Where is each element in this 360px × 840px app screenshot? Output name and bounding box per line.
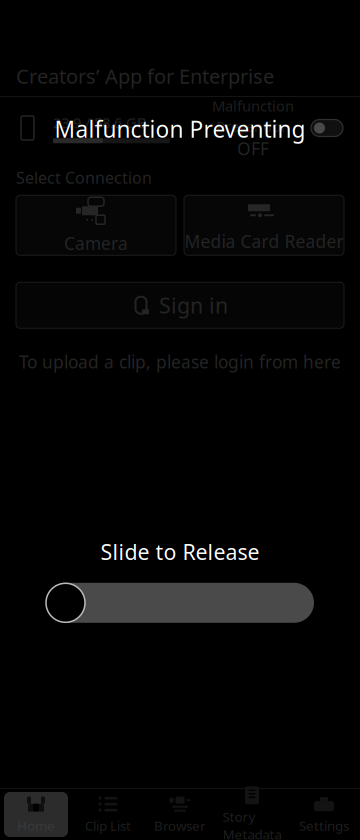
staticText: Malfunction Preventing — [54, 114, 305, 144]
button[interactable]: Slide to Release — [46, 582, 314, 624]
button[interactable]: Story Metadata — [216, 792, 288, 837]
button[interactable]: Home — [0, 792, 72, 837]
staticText: Settings — [299, 817, 349, 834]
button[interactable]: Malfunction Prevention — [306, 108, 348, 148]
staticText: Slide to Release — [100, 537, 259, 566]
staticText: Camera — [64, 232, 128, 255]
button[interactable]: Browser — [144, 792, 216, 837]
staticText: Malfunction — [212, 96, 294, 115]
button[interactable]: Camera — [16, 195, 176, 255]
staticText: Clip List — [85, 817, 131, 834]
button[interactable]: Media Card Reader — [184, 195, 344, 255]
staticText: Media Card Reader — [184, 230, 343, 253]
staticText: To upload a clip, please login from here — [19, 350, 341, 373]
button[interactable]: Settings — [288, 792, 360, 837]
staticText: Select Connection — [16, 167, 152, 188]
staticText: Browser — [154, 817, 206, 834]
staticText: Creators’ App for Enterprise — [16, 63, 274, 89]
staticText: Prevention — [216, 116, 290, 136]
staticText: 23.9 / 58.6 GB — [53, 113, 147, 132]
button[interactable]: Clip List — [72, 792, 144, 837]
button[interactable]: Sign in — [16, 282, 344, 328]
staticText: Home — [17, 817, 55, 834]
staticText: OFF — [237, 137, 269, 160]
staticText: Story Metadata — [222, 808, 281, 840]
staticText: Sign in — [159, 291, 228, 319]
